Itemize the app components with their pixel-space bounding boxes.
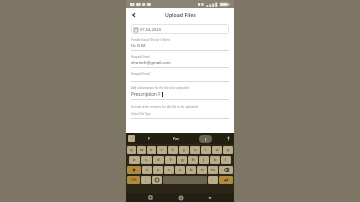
button[interactable]: n (197, 166, 207, 174)
staticText: e (150, 147, 153, 153)
button[interactable]: b (186, 166, 196, 174)
button[interactable]: o (212, 146, 222, 154)
staticText: u (194, 147, 197, 153)
staticText: Hospital Email (131, 55, 150, 59)
staticText: Select File Type (131, 112, 151, 116)
button[interactable]: Add a description for the file to be upl… (131, 86, 229, 100)
button[interactable]: h (188, 156, 198, 164)
staticText: l (225, 157, 227, 163)
button[interactable]: w (137, 146, 146, 154)
button[interactable]: , (141, 176, 151, 184)
button[interactable]: F (145, 136, 154, 141)
staticText: Dr. D.M. (131, 43, 147, 49)
button[interactable]: m (208, 166, 218, 174)
button[interactable]: t (168, 146, 178, 154)
staticText: Hospital Email (131, 72, 150, 76)
button[interactable]: Hospital Email (131, 55, 229, 68)
staticText: a (133, 157, 136, 163)
button[interactable]: Backspace (219, 166, 233, 174)
button[interactable]: e (147, 146, 156, 154)
staticText: . (212, 177, 214, 183)
staticText: I (205, 137, 207, 142)
button[interactable]: Emoji keyboard (152, 176, 162, 184)
button[interactable]: For (170, 136, 183, 141)
button[interactable]: Recents (146, 193, 155, 202)
button[interactable]: i (201, 146, 211, 154)
button[interactable]: a (129, 156, 140, 164)
button[interactable]: Hospital Email (131, 72, 229, 82)
staticText: Upload Files (165, 11, 196, 18)
staticText: , (145, 177, 147, 183)
staticText: Provide Issuer/Doctor's Name (131, 38, 171, 42)
staticText: drsmith@gmail.com (131, 60, 171, 66)
button[interactable]: Enter (219, 176, 233, 184)
button[interactable]: v (175, 166, 185, 174)
button[interactable]: f (165, 156, 176, 164)
staticText: t (172, 147, 174, 153)
staticText: k (214, 157, 217, 163)
button[interactable]: u (190, 146, 200, 154)
staticText: 07-04-2024 (140, 27, 161, 32)
staticText: q (130, 147, 133, 153)
button[interactable]: y (179, 146, 189, 154)
button[interactable]: I (199, 135, 212, 143)
staticText: s (145, 157, 148, 163)
staticText: ?123 (130, 178, 137, 182)
staticText: Prescription F (131, 91, 161, 97)
staticText: m (211, 167, 215, 173)
button[interactable]: p (223, 146, 233, 154)
staticText: b (190, 167, 193, 173)
button[interactable]: 07-04-2024 (131, 24, 229, 34)
button[interactable]: Home (176, 193, 185, 202)
button[interactable]: . (208, 176, 218, 184)
button[interactable]: ?123 (127, 176, 140, 184)
staticText: j (203, 157, 205, 163)
button[interactable]: Emoji (128, 135, 135, 142)
staticText: h (192, 157, 195, 163)
button[interactable]: x (153, 166, 163, 174)
staticText: Include other remarks for this file to b… (131, 105, 229, 109)
staticText: z (146, 167, 148, 173)
staticText: x (157, 167, 160, 173)
staticText: c (168, 167, 171, 173)
button[interactable]: g (177, 156, 187, 164)
button[interactable]: z (142, 166, 152, 174)
staticText: o (216, 147, 219, 153)
staticText: f (170, 157, 172, 163)
button[interactable]: d (153, 156, 164, 164)
staticText: r (161, 147, 163, 153)
button[interactable]: Hide keyboard (205, 193, 214, 202)
staticText: p (227, 147, 230, 153)
staticText: y (183, 147, 186, 153)
button[interactable]: k (210, 156, 220, 164)
staticText: g (181, 157, 184, 163)
button[interactable]: Shift (127, 166, 141, 174)
staticText: v (179, 167, 182, 173)
staticText: d (157, 157, 160, 163)
staticText: i (205, 147, 207, 153)
button[interactable]: s (141, 156, 152, 164)
button[interactable]: j (199, 156, 209, 164)
button[interactable]: Provide Issuer/Doctor's Name (131, 38, 229, 51)
staticText: Add a description for the file to be upl… (131, 86, 189, 90)
button[interactable]: l (221, 156, 231, 164)
staticText: n (201, 167, 204, 173)
button[interactable]: r (157, 146, 167, 154)
button[interactable]: c (164, 166, 174, 174)
button[interactable]: Voice input (225, 135, 232, 142)
button[interactable]: Back (129, 10, 139, 20)
staticText: w (140, 147, 144, 153)
button[interactable]: q (127, 146, 136, 154)
